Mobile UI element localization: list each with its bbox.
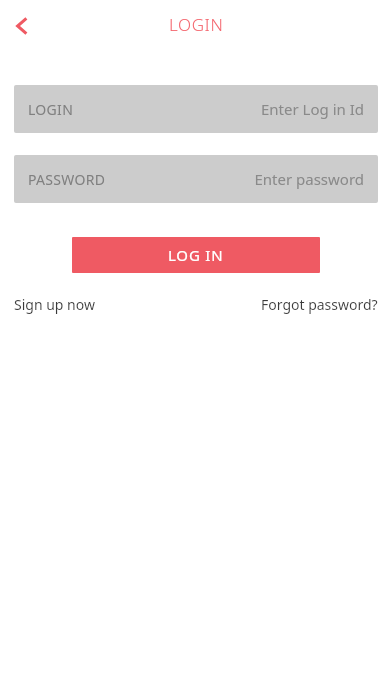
staticText: LOG IN (168, 245, 224, 265)
staticText: Sign up now (14, 295, 95, 314)
button[interactable]: LOGIN (14, 85, 378, 133)
staticText: PASSWORD (28, 170, 106, 189)
button[interactable]: PASSWORD (14, 155, 378, 203)
staticText: LOGIN (28, 100, 74, 119)
button[interactable]: LOG IN (72, 237, 320, 273)
staticText: Forgot password? (261, 295, 378, 314)
staticText: Enter password (254, 169, 364, 189)
button[interactable]: Back (4, 8, 40, 44)
staticText: LOGIN (169, 13, 224, 36)
staticText: Enter Log in Id (261, 99, 364, 119)
button[interactable]: Sign up now (14, 295, 95, 314)
button[interactable]: Forgot password? (261, 295, 378, 314)
